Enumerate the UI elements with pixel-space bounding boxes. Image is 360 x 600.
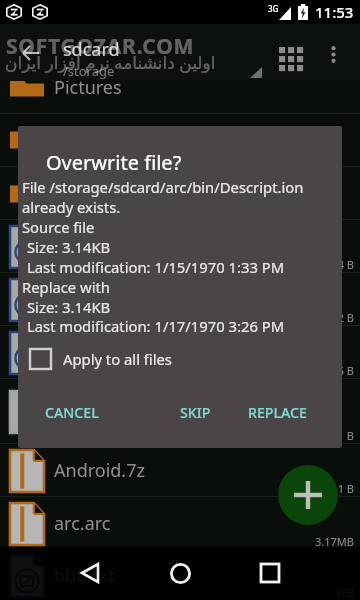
staticText: SKIP — [180, 403, 211, 422]
staticText: Android.7z — [54, 458, 145, 483]
button[interactable]: Grid view — [274, 42, 310, 78]
button[interactable]: More options — [318, 39, 348, 69]
staticText: 3.17MB — [280, 534, 354, 549]
staticText: Size: 3.14KB — [27, 297, 111, 317]
staticText: Last modification: 1/15/1970 1:33 PM — [27, 257, 285, 277]
staticText: Ringtones — [54, 181, 140, 206]
button[interactable]: arc.arc — [0, 497, 360, 550]
button[interactable]: arc.bin — [0, 379, 360, 444]
button[interactable]: Descript.ion — [0, 220, 360, 273]
button[interactable]: Home — [156, 549, 204, 597]
button[interactable]: Back — [66, 549, 114, 597]
button[interactable]: Pictures — [0, 62, 360, 114]
staticText: اولین دانشنامه نرم افزار ایران — [5, 51, 216, 74]
button[interactable]: CANCEL — [35, 395, 109, 430]
staticText: 12 B — [280, 310, 354, 325]
staticText: SOFTGOZAR.COM — [6, 32, 195, 61]
staticText: aaa.txt — [54, 287, 112, 312]
button[interactable]: Recent apps — [246, 549, 294, 597]
staticText: bbb.txt — [54, 563, 115, 588]
staticText: Pictures — [54, 75, 122, 100]
staticText: Last modification: 1/17/1970 3:26 PM — [27, 316, 285, 336]
staticText: 25 B — [280, 363, 354, 378]
staticText: CANCEL — [45, 403, 99, 422]
button[interactable]: Ringtones — [0, 167, 360, 220]
staticText: 11:53 — [315, 2, 354, 22]
staticText: Replace with — [22, 277, 110, 297]
staticText: 14 B — [280, 257, 354, 272]
staticText: 3G — [268, 3, 279, 14]
staticText: sdcard — [63, 37, 120, 62]
button[interactable]: aaa.txt — [0, 273, 360, 326]
button[interactable]: SKIP — [170, 395, 221, 430]
button[interactable]: abc.txt — [0, 326, 360, 379]
staticText: Source file — [22, 217, 95, 237]
button[interactable]: Podcasts — [0, 114, 360, 167]
staticText: REPLACE — [248, 403, 308, 422]
button[interactable]: Add — [278, 465, 338, 525]
staticText: abc.txt — [54, 340, 112, 365]
staticText: 1 B — [280, 428, 354, 443]
button[interactable]: Apply to all files — [25, 343, 165, 374]
button[interactable]: Android.7z — [0, 444, 360, 497]
staticText: /storage — [63, 62, 115, 80]
staticText: arc.bin — [54, 399, 112, 424]
staticText: Apply to all files — [63, 349, 172, 369]
button[interactable]: REPLACE — [238, 395, 318, 430]
staticText: already exists. — [22, 197, 121, 217]
button[interactable]: bbb.txt — [0, 550, 360, 600]
staticText: 1 B — [280, 481, 354, 496]
staticText: File /storage/sdcard/arc/bin/Descript.io… — [22, 177, 304, 197]
staticText: Overwrite file? — [46, 149, 182, 176]
staticText: arc.arc — [54, 511, 111, 536]
staticText: Descript.ion — [54, 234, 156, 259]
button[interactable]: Navigate up — [10, 33, 50, 73]
staticText: Size: 3.14KB — [27, 237, 111, 257]
